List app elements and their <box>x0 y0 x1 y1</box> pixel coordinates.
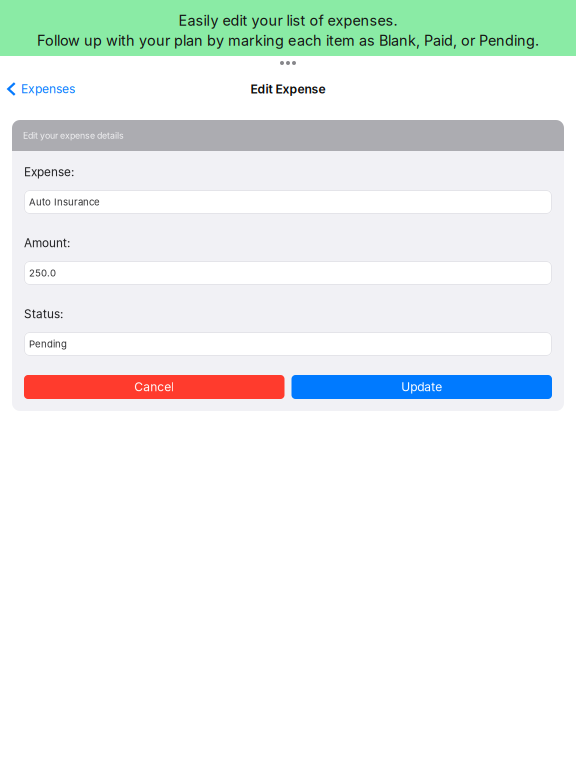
staticText: Expense: <box>24 165 74 179</box>
button[interactable]: Update <box>291 375 552 399</box>
staticText: Follow up with your plan by marking each… <box>37 32 539 49</box>
staticText: Status: <box>24 307 63 321</box>
staticText: Pending <box>29 338 67 350</box>
staticText: 250.0 <box>29 267 56 279</box>
button[interactable]: Cancel <box>24 375 284 399</box>
staticText: Update <box>401 380 442 394</box>
button[interactable]: Expenses <box>0 74 83 104</box>
staticText: Expenses <box>21 82 75 96</box>
staticText: Easily edit your list of expenses. <box>178 12 397 29</box>
staticText: Amount: <box>24 236 70 250</box>
staticText: Auto Insurance <box>29 196 100 208</box>
staticText: Edit Expense <box>250 82 325 96</box>
staticText: Cancel <box>134 380 174 394</box>
staticText: Edit your expense details <box>23 130 124 141</box>
